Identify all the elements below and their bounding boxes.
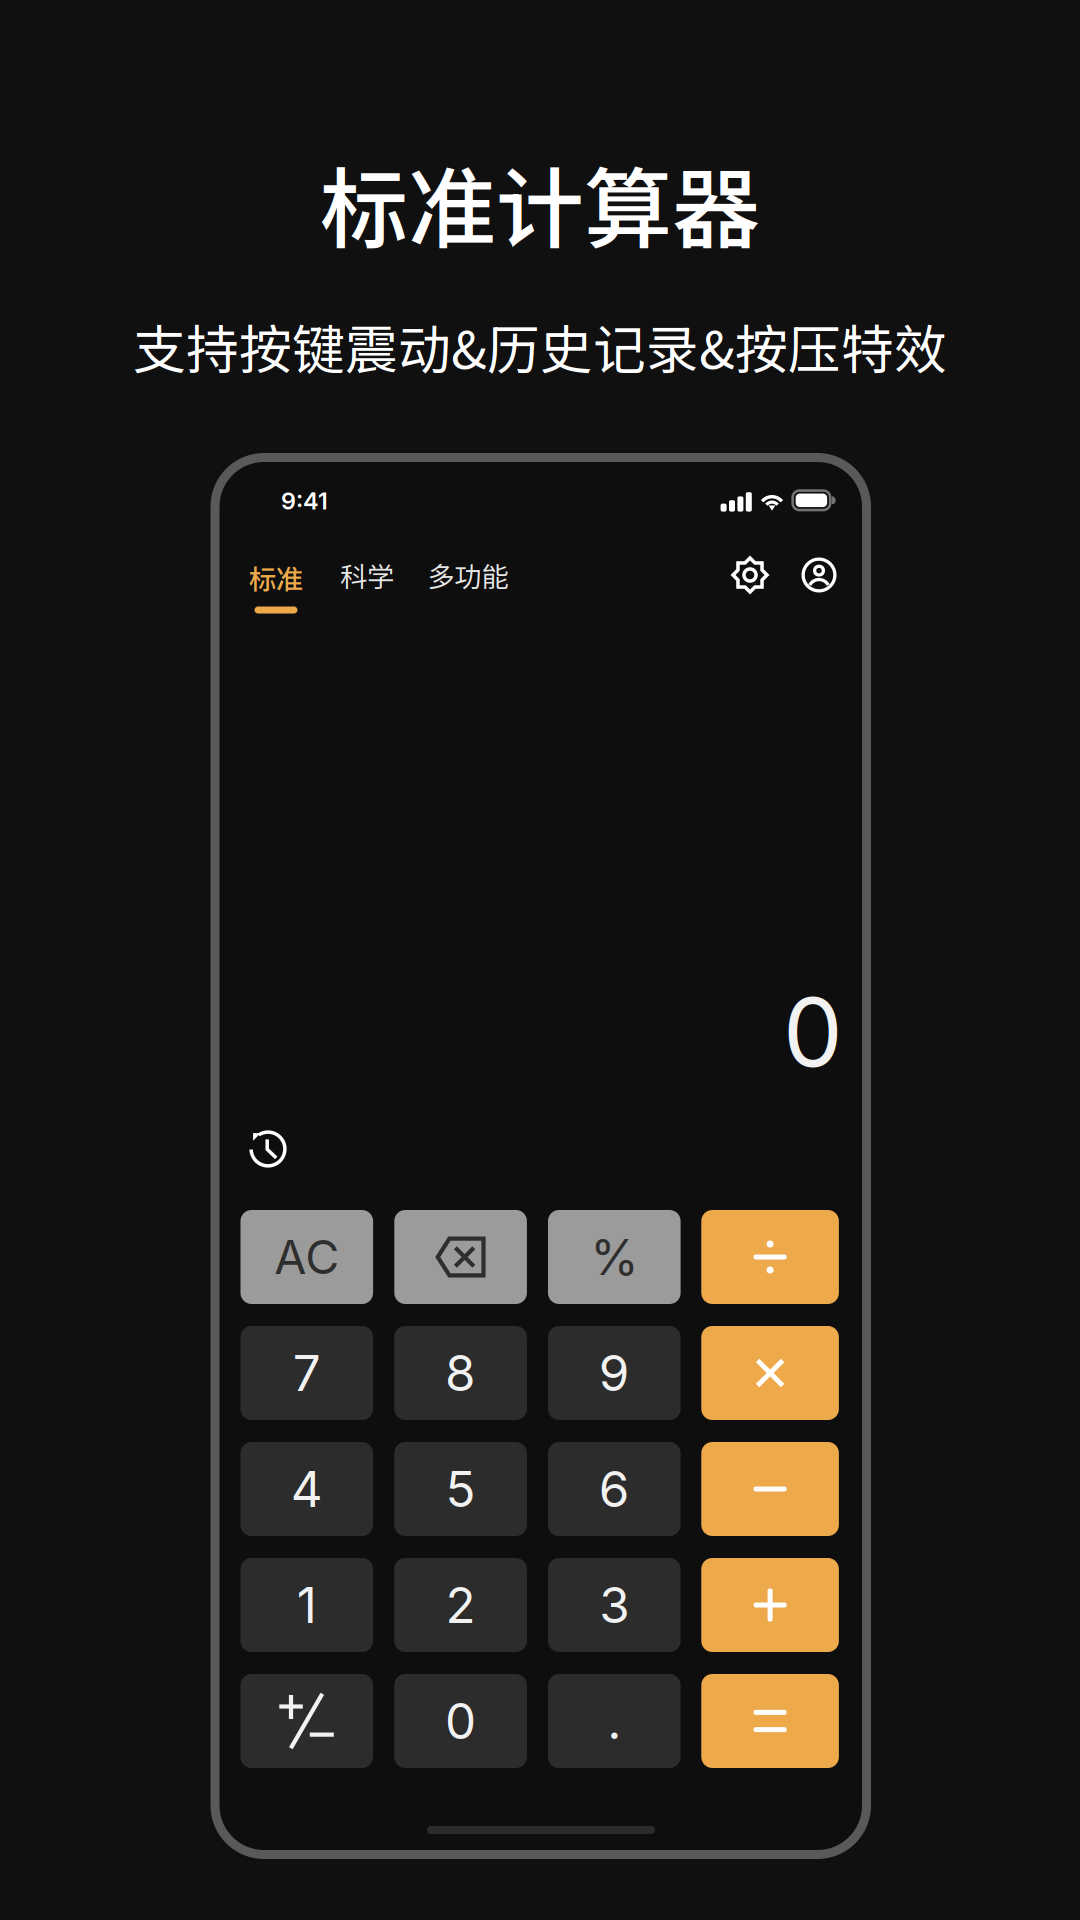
button[interactable]: Multiply [701,1326,839,1420]
button[interactable]: Equals [701,1674,839,1768]
staticText: AC [274,1229,339,1285]
button[interactable]: 5 [394,1442,527,1536]
staticText: 标准计算器 [320,139,760,267]
button[interactable]: Account [791,547,847,603]
staticText: 7 [293,1343,321,1403]
button[interactable]: 8 [394,1326,527,1420]
staticText: 9:41 [281,487,328,515]
staticText: 3 [599,1575,629,1635]
button[interactable]: History [241,1122,295,1176]
staticText: 支持按键震动&历史记录&按压特效 [133,308,947,384]
staticText: 6 [599,1459,630,1519]
button[interactable]: 4 [240,1442,373,1536]
button[interactable]: 科学 [330,553,404,597]
button[interactable]: Add [701,1558,839,1652]
button[interactable]: 3 [548,1558,681,1652]
button[interactable]: 6 [548,1442,681,1536]
button[interactable]: . [548,1674,681,1768]
button[interactable]: 1 [240,1558,373,1652]
staticText: 科学 [340,555,394,595]
button[interactable]: Toggle sign [240,1674,373,1768]
button[interactable]: Backspace [394,1210,527,1304]
staticText: 8 [445,1343,476,1403]
button[interactable]: 2 [394,1558,527,1652]
staticText: . [607,1691,621,1751]
button[interactable]: % [548,1210,681,1304]
staticText: 2 [446,1575,476,1635]
staticText: 0 [445,1691,476,1751]
button[interactable]: 7 [240,1326,373,1420]
button[interactable]: AC [240,1210,373,1304]
button[interactable]: Settings [722,547,778,603]
button[interactable]: 0 [394,1674,527,1768]
staticText: 0 [783,975,843,1089]
staticText: % [590,1227,638,1287]
staticText: 9 [599,1343,630,1403]
staticText: 5 [446,1459,476,1519]
staticText: 4 [291,1459,323,1519]
button[interactable]: Subtract [701,1442,839,1536]
button[interactable]: Divide [701,1210,839,1304]
button[interactable]: 标准 [239,558,313,618]
staticText: 1 [297,1575,317,1635]
staticText: 多功能 [427,555,508,595]
staticText: 标准 [249,558,303,597]
button[interactable]: 9 [548,1326,681,1420]
button[interactable]: 多功能 [420,553,516,597]
